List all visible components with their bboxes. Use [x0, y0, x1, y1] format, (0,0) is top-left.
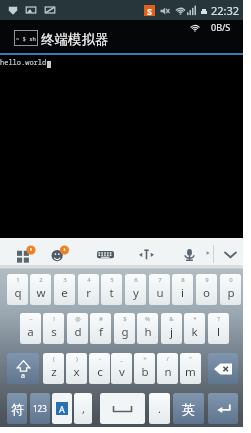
button[interactable]: 3: [54, 274, 75, 305]
staticText: 123: [33, 403, 47, 414]
staticText: e: [61, 285, 68, 301]
button[interactable]: 6: [125, 274, 146, 305]
staticText: r: [86, 285, 91, 301]
staticText: d: [74, 324, 82, 340]
staticText: 8: [181, 276, 185, 284]
button[interactable]: +: [134, 353, 155, 384]
staticText: *: [193, 315, 197, 323]
button[interactable]: ~: [20, 313, 41, 344]
staticText: &: [169, 315, 174, 323]
button[interactable]: Emoji: [48, 243, 68, 265]
staticText: h: [144, 324, 152, 340]
button[interactable]: Shift: [7, 353, 39, 384]
staticText: c: [97, 364, 103, 380]
staticText: 5: [110, 276, 114, 284]
button[interactable]: Space: [100, 393, 145, 424]
button[interactable]: *: [184, 313, 205, 344]
button[interactable]: Move cursor: [136, 243, 156, 265]
staticText: ~ $ sh: [16, 35, 36, 42]
staticText: a: [27, 324, 34, 340]
button[interactable]: Backspace: [208, 353, 238, 384]
staticText: ": [189, 355, 192, 363]
staticText: %: [145, 315, 150, 323]
staticText: 22:32: [211, 3, 240, 18]
staticText: x: [73, 364, 80, 380]
button[interactable]: 9: [196, 274, 217, 305]
button[interactable]: 0: [220, 274, 241, 305]
staticText: w: [36, 285, 46, 301]
button[interactable]: 8: [172, 274, 193, 305]
button[interactable]: 英: [173, 393, 204, 424]
staticText: -: [99, 355, 101, 363]
button[interactable]: _: [111, 353, 132, 384]
staticText: 0: [229, 276, 233, 284]
button[interactable]: Keyboard: [95, 243, 115, 265]
button[interactable]: $: [114, 313, 135, 344]
staticText: 3: [63, 276, 67, 284]
staticText: s: [51, 324, 57, 340]
staticText: 4: [87, 276, 91, 284]
staticText: 6: [134, 276, 138, 284]
staticText: A: [59, 403, 65, 415]
button[interactable]: !: [43, 313, 64, 344]
staticText: l: [217, 324, 220, 340]
staticText: b: [141, 364, 149, 380]
staticText: 1: [16, 276, 20, 284]
staticText: 符: [11, 401, 24, 417]
staticText: g: [121, 324, 129, 340]
staticText: ~: [29, 315, 33, 323]
staticText: z: [51, 364, 57, 380]
staticText: u: [156, 285, 164, 301]
staticText: f: [99, 324, 103, 340]
button[interactable]: Voice input: [179, 243, 199, 265]
staticText: #: [99, 315, 103, 323]
staticText: p: [227, 285, 235, 301]
staticText: v: [119, 364, 125, 380]
button[interactable]: #: [90, 313, 111, 344]
staticText: hello.world: [0, 58, 47, 68]
button[interactable]: Change language: [52, 393, 72, 424]
staticText: i: [181, 285, 184, 301]
staticText: k: [191, 324, 198, 340]
staticText: t: [109, 285, 114, 301]
staticText: @: [75, 315, 81, 323]
staticText: j: [170, 324, 173, 340]
button[interactable]: 2: [30, 274, 51, 305]
staticText: 2: [39, 276, 43, 284]
button[interactable]: ,: [74, 393, 92, 424]
staticText: ): [76, 355, 78, 363]
button[interactable]: 123: [30, 393, 50, 424]
staticText: .: [158, 401, 161, 416]
button[interactable]: /: [157, 353, 178, 384]
staticText: y: [133, 285, 139, 301]
button[interactable]: ): [66, 353, 87, 384]
button[interactable]: 5: [101, 274, 122, 305]
button[interactable]: @: [67, 313, 88, 344]
staticText: o: [203, 285, 210, 301]
staticText: (: [53, 355, 55, 363]
staticText: $: [123, 315, 127, 323]
button[interactable]: Apps: [15, 243, 35, 265]
button[interactable]: Enter: [208, 393, 238, 424]
button[interactable]: 1: [7, 274, 28, 305]
button[interactable]: 4: [78, 274, 99, 305]
button[interactable]: %: [137, 313, 158, 344]
button[interactable]: 7: [149, 274, 170, 305]
staticText: 0B/S: [211, 21, 231, 33]
staticText: _: [120, 355, 123, 363]
staticText: !: [53, 315, 55, 323]
staticText: q: [14, 285, 22, 301]
button[interactable]: &: [161, 313, 182, 344]
staticText: S: [147, 5, 152, 16]
staticText: n: [164, 364, 172, 380]
button[interactable]: (: [43, 353, 64, 384]
button[interactable]: .: [149, 393, 170, 424]
button[interactable]: ?: [208, 313, 229, 344]
staticText: 9: [205, 276, 209, 284]
button[interactable]: ": [180, 353, 201, 384]
button[interactable]: -: [89, 353, 110, 384]
staticText: a: [21, 371, 25, 381]
button[interactable]: 符: [7, 393, 27, 424]
button[interactable]: Hide keyboard: [220, 243, 240, 265]
staticText: 英: [182, 401, 195, 417]
